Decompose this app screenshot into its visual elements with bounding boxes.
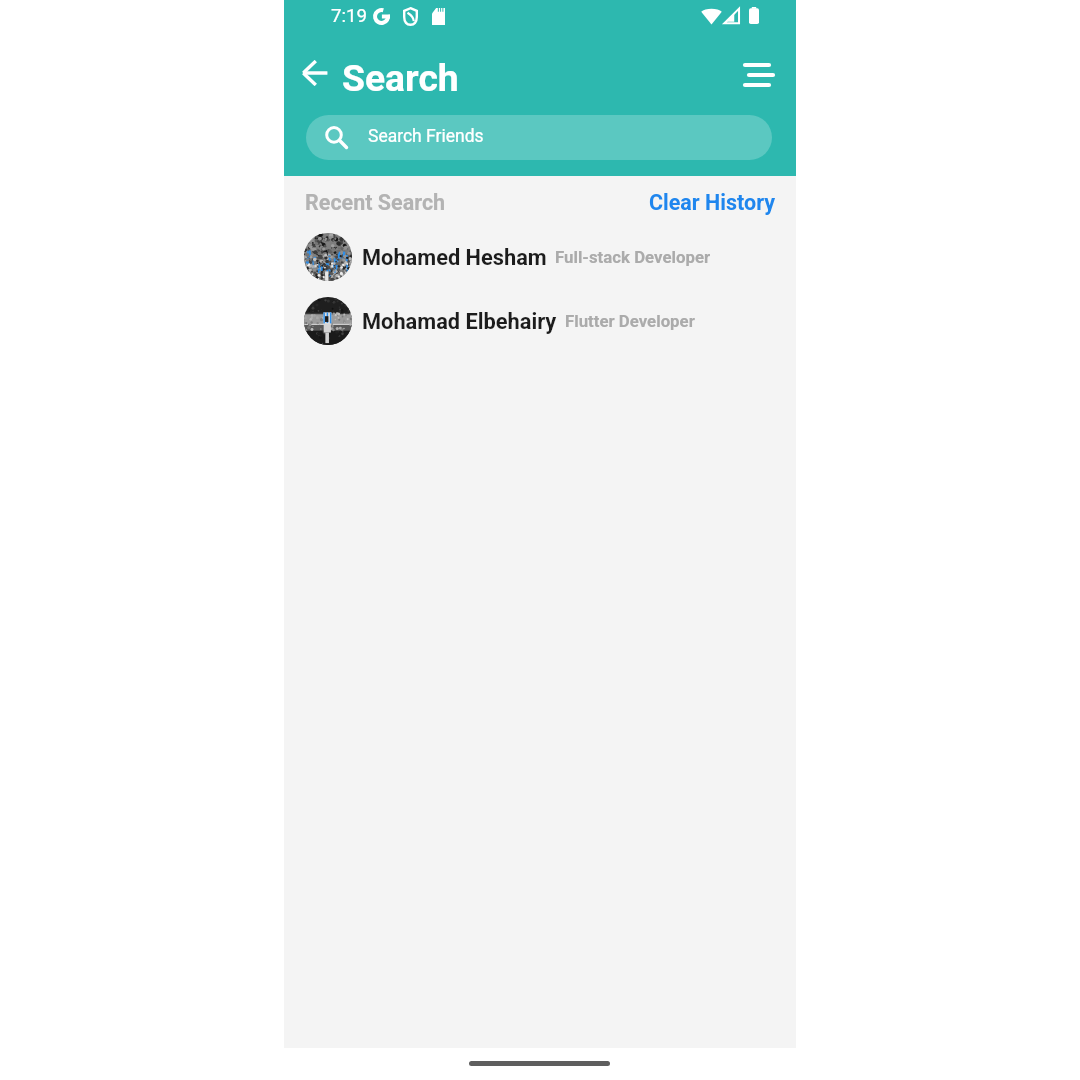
staticText: Recent Search xyxy=(305,190,446,215)
staticText: Mohamed Hesham xyxy=(362,245,547,271)
button[interactable]: Menu xyxy=(738,54,780,96)
button[interactable]: Mohamad Elbehairy xyxy=(304,292,764,350)
button[interactable]: Back xyxy=(302,60,328,86)
staticText: Search xyxy=(342,56,459,100)
button[interactable]: Clear History xyxy=(645,186,780,219)
staticText: Mohamad Elbehairy xyxy=(362,309,557,335)
button[interactable]: Mohamed Hesham xyxy=(304,228,764,286)
staticText: Flutter Developer xyxy=(565,311,695,331)
staticText: Clear History xyxy=(649,190,776,215)
staticText: 7:19 xyxy=(331,5,368,27)
button[interactable]: Search Friends xyxy=(306,115,772,160)
staticText: Search Friends xyxy=(368,126,484,147)
staticText: Full-stack Developer xyxy=(555,247,711,267)
